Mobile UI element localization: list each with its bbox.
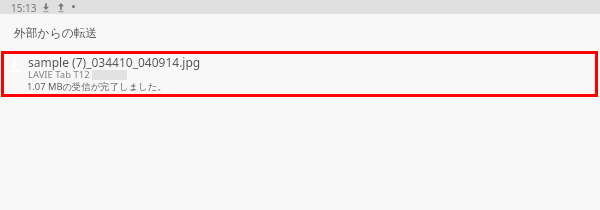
staticText: sample (7)_034410_040914.jpg <box>28 54 201 70</box>
other: Upload in progress <box>57 3 65 12</box>
staticText: LAVIE Tab T12 <box>28 68 90 81</box>
other: Notification <box>72 5 75 8</box>
staticText: 外部からの転送 <box>14 26 98 41</box>
staticText: 15:13 <box>11 1 37 15</box>
staticText: 1.07 MBの受信が完了しました。 <box>27 80 167 93</box>
button[interactable]: sample (7)_034410_040914.jpg <box>1 51 598 97</box>
other: Download in progress <box>42 3 50 12</box>
